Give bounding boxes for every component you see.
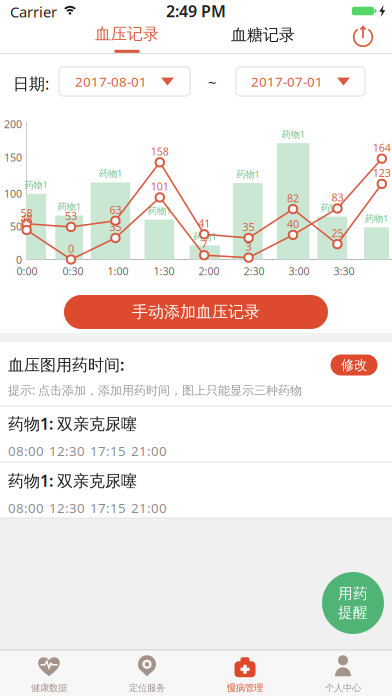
staticText: 2017-08-01 <box>75 73 147 90</box>
staticText: 2:49 PM <box>166 0 226 22</box>
staticText: 提示: 点击添加，添加用药时间，图上只能显示三种药物 <box>8 382 302 398</box>
staticText: 08:00 <box>8 499 44 517</box>
button[interactable]: 血糖记录 <box>231 25 295 45</box>
staticText: 手动添加血压记录 <box>132 302 260 322</box>
staticText: 123 <box>373 166 391 180</box>
staticText: 健康数据 <box>31 682 67 694</box>
staticText: 53 <box>65 209 77 223</box>
staticText: 1:00 <box>107 264 128 278</box>
staticText: 日期: <box>13 73 49 94</box>
staticText: 0 <box>68 241 74 256</box>
button[interactable]: 用药 <box>322 572 384 634</box>
staticText: 7 <box>201 237 207 251</box>
staticText: 药物1 <box>365 212 388 225</box>
staticText: 慢病管理 <box>227 682 263 694</box>
staticText: 用药 <box>338 584 368 602</box>
staticText: 21:00 <box>131 442 167 460</box>
staticText: 2017-07-01 <box>251 73 323 90</box>
staticText: 200 <box>4 117 22 131</box>
staticText: 0 <box>16 252 22 267</box>
staticText: 血压图用药时间: <box>8 354 124 375</box>
staticText: 血压记录 <box>95 24 159 44</box>
staticText: 63 <box>109 203 121 217</box>
staticText: 35 <box>109 220 121 234</box>
button[interactable]: 定位服务 <box>102 651 192 696</box>
staticText: 2:30 <box>243 264 264 278</box>
staticText: 25 <box>331 226 343 240</box>
staticText: 48 <box>21 212 33 226</box>
staticText: 个人中心 <box>325 682 361 694</box>
staticText: 41 <box>198 216 210 230</box>
staticText: 修改 <box>341 357 367 373</box>
staticText: 82 <box>287 191 299 205</box>
staticText: 100 <box>4 186 22 201</box>
button[interactable]: 慢病管理 <box>200 651 290 696</box>
staticText: 158 <box>151 144 169 158</box>
staticText: 血糖记录 <box>231 25 295 45</box>
staticText: 40 <box>287 217 299 231</box>
staticText: 2:00 <box>198 264 219 278</box>
staticText: 药物1 <box>193 230 216 242</box>
button[interactable]: 健康数据 <box>4 651 94 696</box>
staticText: 药物1 <box>24 179 47 191</box>
staticText: 药物1 <box>99 167 122 180</box>
staticText: 50 <box>10 219 22 233</box>
button[interactable]: 手动添加血压记录 <box>64 295 328 329</box>
staticText: 药物1 <box>282 128 305 140</box>
staticText: 35 <box>243 220 255 234</box>
staticText: 3:30 <box>333 264 354 278</box>
staticText: 12:30 <box>49 442 85 460</box>
staticText: 08:00 <box>8 442 44 460</box>
button[interactable]: 同步 <box>352 25 374 47</box>
staticText: 101 <box>151 179 169 193</box>
staticText: 药物1 <box>58 200 81 213</box>
staticText: 58 <box>21 206 33 220</box>
staticText: 17:15 <box>90 499 126 517</box>
staticText: Carrier <box>10 2 57 21</box>
staticText: 83 <box>331 190 343 205</box>
staticText: 定位服务 <box>129 682 165 694</box>
staticText: 17:15 <box>90 442 126 460</box>
staticText: 12:30 <box>49 499 85 517</box>
staticText: 3 <box>246 240 252 254</box>
staticText: 药物1 <box>148 204 171 217</box>
staticText: 3:00 <box>288 264 309 278</box>
staticText: 药物1: 双亲克尿噻 <box>8 470 137 491</box>
staticText: 药物1 <box>321 201 344 214</box>
button[interactable]: 血压记录 <box>95 24 159 53</box>
staticText: 21:00 <box>131 499 167 517</box>
staticText: 提醒 <box>338 603 368 621</box>
staticText: 150 <box>4 150 22 164</box>
staticText: 1:30 <box>153 264 174 278</box>
staticText: 药物1: 双亲克尿噻 <box>8 413 137 434</box>
staticText: 164 <box>373 141 391 155</box>
staticText: 0:00 <box>16 264 37 278</box>
button[interactable]: 个人中心 <box>298 651 388 696</box>
button[interactable]: 2017-07-01 <box>236 67 365 96</box>
staticText: ~ <box>208 72 216 92</box>
staticText: 0:30 <box>62 264 83 278</box>
button[interactable]: 修改 <box>330 354 377 375</box>
staticText: 药物1 <box>236 168 259 180</box>
button[interactable]: 2017-08-01 <box>59 67 190 96</box>
